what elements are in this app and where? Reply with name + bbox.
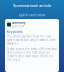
staticText: The article explains how the new system … bbox=[7, 35, 56, 45]
staticText: Summary bbox=[12, 21, 25, 24]
staticText: Key points bbox=[7, 30, 22, 34]
staticText: Summarized article bbox=[13, 3, 51, 8]
staticText: just now bbox=[12, 24, 24, 28]
staticText: It also covers the trade offs involved a… bbox=[7, 47, 57, 61]
staticText: quick overview bbox=[19, 12, 45, 17]
